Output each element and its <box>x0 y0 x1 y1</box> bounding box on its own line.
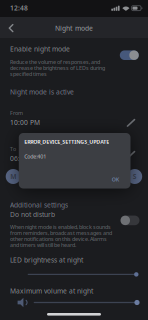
staticText: Night mode is active <box>10 88 74 96</box>
staticText: 06:00 AM <box>10 154 40 163</box>
staticText: Enable night mode <box>10 45 70 53</box>
staticText: and timers will still be heard. <box>10 241 76 248</box>
staticText: Maximum volume at night <box>10 287 93 295</box>
button[interactable]: Edit <box>127 151 135 159</box>
staticText: 10:00 PM <box>10 118 40 127</box>
staticText: S <box>112 172 116 181</box>
staticText: Do not disturb <box>10 210 55 219</box>
button[interactable]: Edit start time <box>10 109 138 127</box>
button[interactable]: Edit end time <box>10 145 138 163</box>
button[interactable]: Repeat S <box>107 169 122 184</box>
staticText: To <box>10 145 16 152</box>
staticText: From <box>10 109 23 116</box>
staticText: Reduce the volume of responses, and <box>10 58 100 65</box>
button[interactable]: Repeat S <box>127 169 142 184</box>
staticText: from reminders, broadcast messages and <box>10 229 112 236</box>
button[interactable]: OK <box>109 173 122 186</box>
staticText: M <box>10 172 16 181</box>
button[interactable]: Edit <box>127 119 135 127</box>
button[interactable]: Do not disturb <box>120 216 139 225</box>
staticText: decrease the brightness of LEDs during <box>10 64 105 71</box>
staticText: Additional settings <box>10 201 68 209</box>
staticText: specified times <box>10 70 47 77</box>
staticText: OK <box>112 176 119 183</box>
staticText: other notifications on this device. Alar… <box>10 235 107 242</box>
staticText: 12:48 <box>10 4 28 12</box>
staticText: Night mode <box>55 24 93 33</box>
staticText: LED brightness at night <box>10 256 83 264</box>
staticText: ERROR_DEVICE_SETTINGS_UPDATE <box>24 138 109 145</box>
staticText: When night mode is enabled, block sounds <box>10 223 111 230</box>
button[interactable]: Enable night mode <box>120 50 139 60</box>
button[interactable]: Back <box>8 24 14 32</box>
staticText: Code:401 <box>24 153 46 160</box>
staticText: S <box>133 172 137 181</box>
button[interactable]: Repeat M <box>6 169 21 184</box>
